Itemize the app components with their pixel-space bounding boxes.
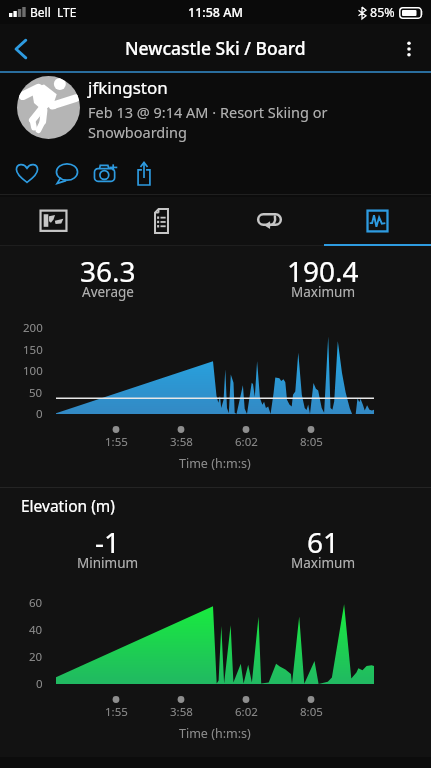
staticText: 61 bbox=[307, 523, 340, 561]
staticText: 0 bbox=[36, 676, 43, 690]
staticText: 60 bbox=[29, 595, 43, 609]
button[interactable]: Charts bbox=[323, 197, 431, 246]
staticText: 11:58 AM bbox=[188, 4, 243, 21]
staticText: Maximum bbox=[291, 283, 356, 301]
staticText: Feb 13 @ 9:14 AM · Resort Skiing or Snow… bbox=[88, 102, 417, 143]
button[interactable]: Map bbox=[0, 197, 107, 246]
staticText: 1:55 bbox=[105, 434, 128, 448]
staticText: 200 bbox=[23, 320, 43, 334]
button[interactable]: More options bbox=[387, 27, 431, 71]
staticText: jfkingston bbox=[88, 76, 168, 99]
staticText: 3:58 bbox=[170, 704, 193, 718]
staticText: 3:58 bbox=[170, 434, 193, 448]
staticText: Minimum bbox=[77, 554, 139, 572]
staticText: LTE bbox=[57, 4, 77, 20]
button[interactable]: Like bbox=[8, 159, 46, 191]
staticText: -1 bbox=[95, 523, 121, 561]
button[interactable]: Back bbox=[0, 27, 44, 71]
staticText: Average bbox=[82, 283, 134, 301]
staticText: 1:55 bbox=[105, 704, 128, 718]
staticText: 100 bbox=[23, 363, 43, 377]
staticText: 20 bbox=[29, 649, 43, 663]
staticText: 85% bbox=[370, 4, 395, 21]
staticText: Time (h:m:s) bbox=[179, 455, 251, 471]
button[interactable]: Laps bbox=[215, 197, 323, 246]
staticText: 0 bbox=[36, 406, 43, 420]
staticText: 36.3 bbox=[80, 252, 136, 290]
button[interactable]: Details bbox=[107, 197, 215, 246]
staticText: 50 bbox=[29, 385, 43, 399]
staticText: 150 bbox=[23, 342, 43, 356]
button[interactable]: Add photo bbox=[86, 159, 126, 191]
staticText: Elevation (m) bbox=[21, 495, 115, 516]
staticText: Bell bbox=[30, 4, 51, 20]
staticText: 6:02 bbox=[235, 434, 258, 448]
staticText: 190.4 bbox=[287, 252, 359, 290]
staticText: 8:05 bbox=[300, 704, 323, 718]
staticText: 8:05 bbox=[300, 434, 323, 448]
staticText: 40 bbox=[29, 622, 43, 636]
button[interactable]: Share bbox=[128, 159, 160, 191]
staticText: 6:02 bbox=[235, 704, 258, 718]
staticText: Maximum bbox=[291, 554, 356, 572]
staticText: Time (h:m:s) bbox=[179, 725, 251, 741]
button[interactable]: Comment bbox=[48, 159, 86, 191]
staticText: Newcastle Ski / Board bbox=[125, 36, 306, 60]
